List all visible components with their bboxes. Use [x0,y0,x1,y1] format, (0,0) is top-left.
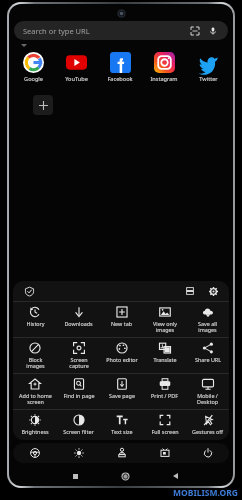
button[interactable]: Recent apps [50,468,100,484]
button[interactable]: Print / PDF [143,378,186,399]
button[interactable]: Instagram [142,50,186,85]
button[interactable]: Save page [100,378,143,399]
staticText: Add to home screen [19,392,52,406]
button[interactable]: car [13,443,57,463]
button[interactable]: Screen capture [57,342,100,370]
staticText: View only images [153,320,177,334]
button[interactable]: Layout [183,284,197,298]
staticText: Full screen [151,428,179,435]
staticText: Twitter [199,75,218,83]
button[interactable]: Facebook [98,50,142,85]
button[interactable]: History [13,306,57,327]
button[interactable]: Settings [206,284,220,298]
staticText: Brightness [21,428,49,435]
button[interactable]: Gestures off [186,414,229,435]
button[interactable]: sun [57,443,100,463]
staticText: Facebook [107,75,133,83]
button[interactable]: View only images [143,306,186,334]
staticText: Photo editor [106,356,138,363]
staticText: Search or type URL [23,26,90,36]
staticText: Google [24,75,43,83]
staticText: Share URL [195,356,221,363]
staticText: Translate [153,356,177,363]
button[interactable]: Block images [13,342,57,370]
button[interactable]: Brightness [13,414,57,435]
button[interactable]: Find in page [57,378,100,399]
button[interactable]: Google [12,50,55,85]
button[interactable]: Mobile / Desktop [186,378,229,406]
button[interactable]: YouTube [55,50,98,85]
button[interactable]: Home [100,468,150,484]
staticText: Text size [111,428,133,435]
button[interactable]: New tab [100,306,143,327]
button[interactable]: Downloads [57,306,100,327]
staticText: Downloads [64,320,93,327]
button[interactable]: Scan QR code [188,24,201,37]
staticText: History [26,320,45,327]
button[interactable]: tv [143,443,186,463]
staticText: Screen filter [63,428,94,435]
button[interactable]: power [186,443,229,463]
staticText: New tab [111,320,132,327]
staticText: Gestures off [192,428,223,435]
button[interactable]: Search or type URL [14,21,228,40]
staticText: Block images [26,356,45,370]
staticText: Screen capture [69,356,89,370]
staticText: MOBILISM.ORG [173,487,238,499]
staticText: Save all images [198,320,217,334]
button[interactable]: Text size [100,414,143,435]
button[interactable]: Back [150,468,200,484]
button[interactable]: Screen filter [57,414,100,435]
button[interactable]: Voice search [206,24,219,37]
button[interactable]: Add to home screen [13,378,57,406]
button[interactable]: Security [22,284,36,298]
staticText: YouTube [65,75,88,83]
staticText: Print / PDF [151,392,178,399]
button[interactable]: mouse [100,443,143,463]
button[interactable]: Photo editor [100,342,143,363]
staticText: Mobile / Desktop [197,392,218,406]
staticText: Save page [109,392,135,399]
button[interactable]: Add shortcut [33,95,53,115]
button[interactable]: Translate [143,342,186,363]
button[interactable]: Twitter [186,50,230,85]
staticText: Instagram [150,75,178,83]
button[interactable]: Share URL [186,342,229,363]
staticText: Find in page [63,392,95,399]
button[interactable]: Full screen [143,414,186,435]
button[interactable]: Save all images [186,306,229,334]
